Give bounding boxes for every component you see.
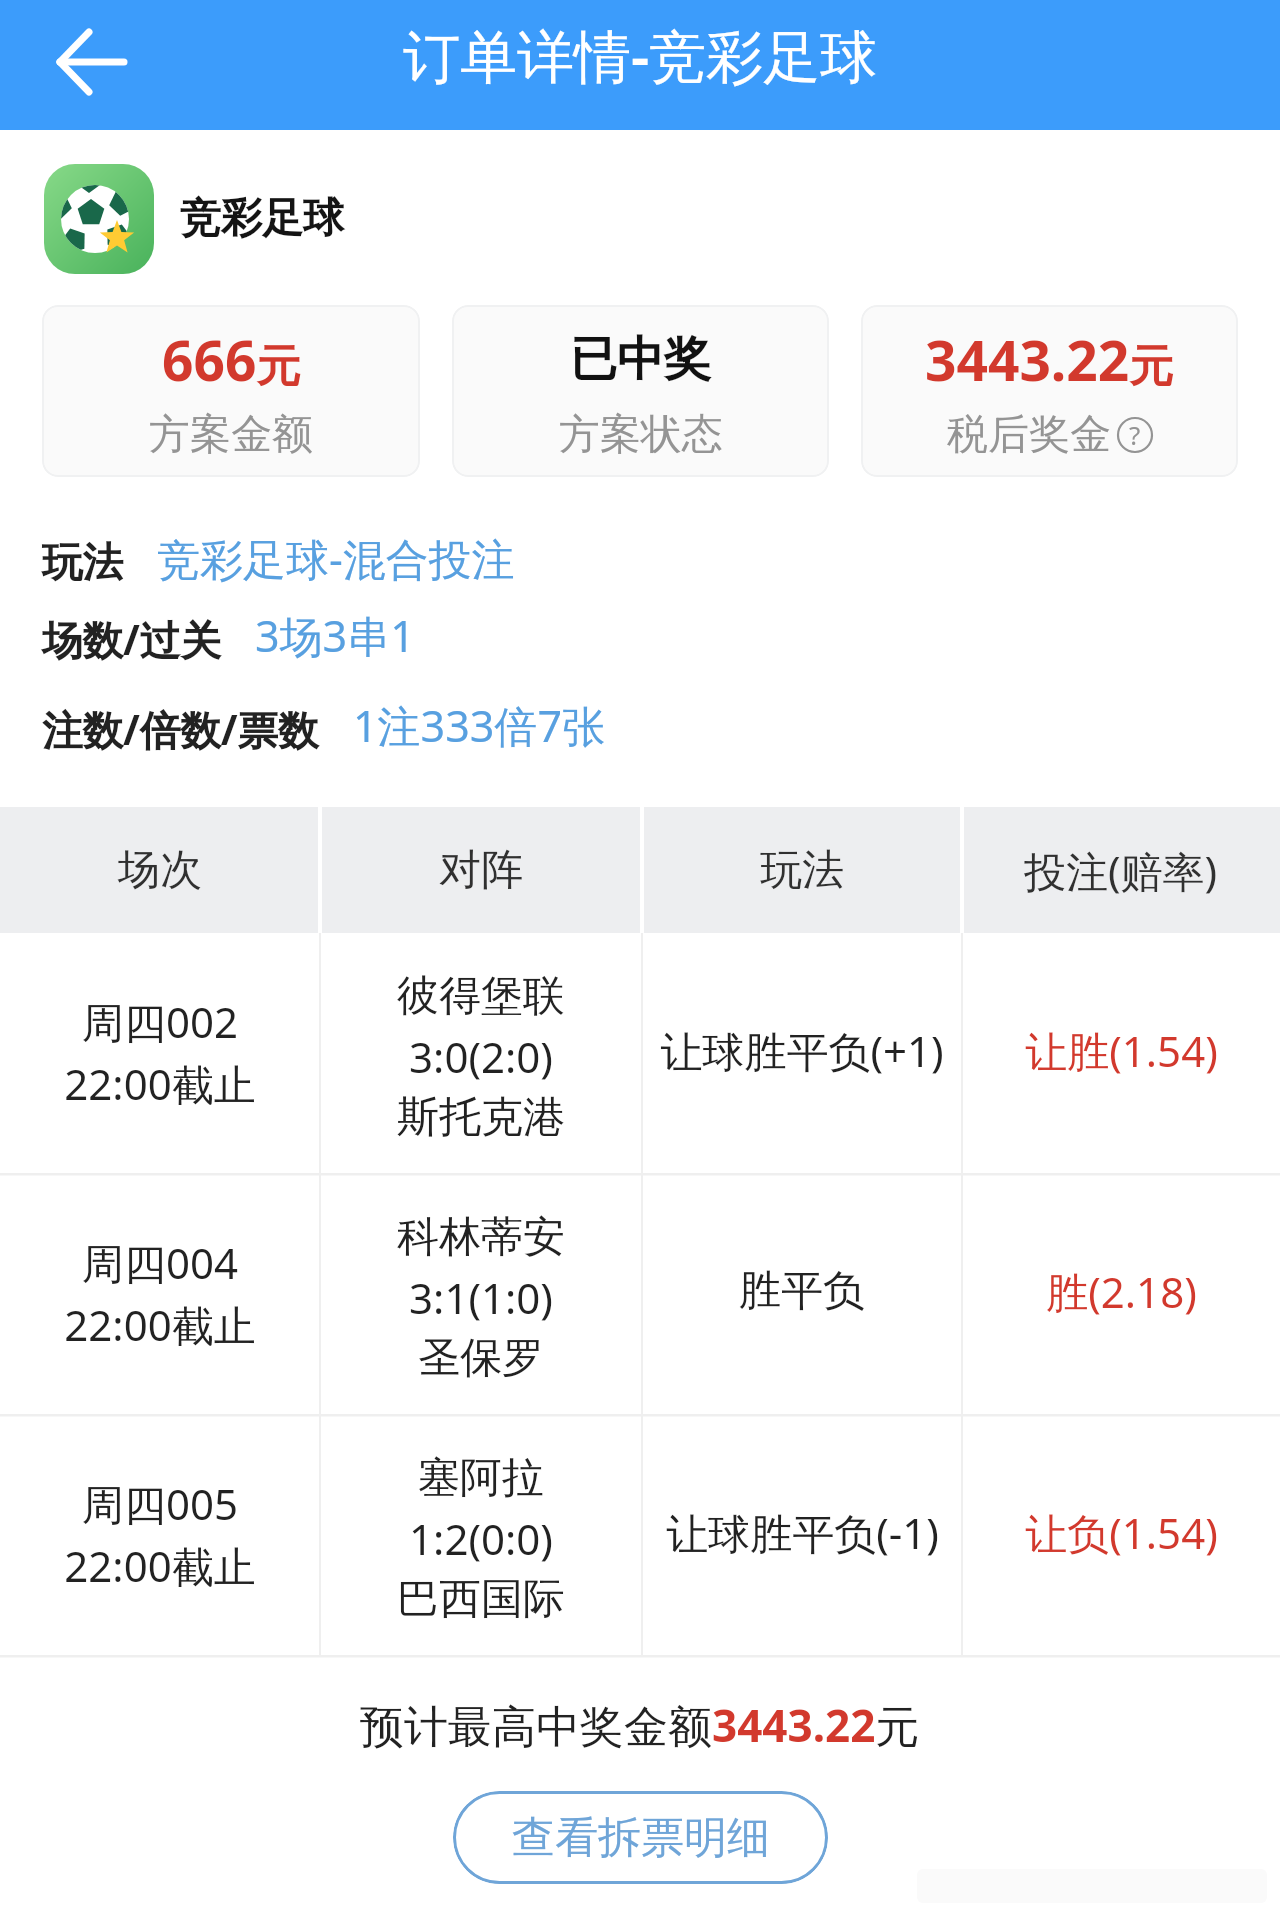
staticText: 让球胜平负(+1) [660, 1022, 944, 1079]
staticText: 胜平负 [739, 1265, 865, 1318]
staticText: 玩法 [760, 844, 844, 897]
button[interactable]: Help [1117, 417, 1153, 453]
staticText: 3443.22元 [925, 322, 1174, 397]
staticText: 周四005 22:00截止 [64, 1475, 256, 1595]
staticText: 彼得堡联 3:0(2:0) 斯托克港 [397, 970, 565, 1143]
staticText: 666元 [162, 322, 301, 397]
staticText: 让球胜平负(-1) [666, 1504, 939, 1561]
staticText: 预计最高中奖金额3443.22元 [360, 1695, 920, 1755]
staticText: 对阵 [439, 844, 523, 897]
staticText: 让胜(1.54) [1025, 1022, 1218, 1079]
staticText: 查看拆票明细 [512, 1811, 770, 1865]
staticText: 玩法 [42, 537, 123, 588]
staticText: 场次 [118, 844, 202, 897]
staticText: 注数/倍数/票数 [42, 702, 319, 757]
staticText: 3场3串1 [255, 606, 415, 665]
staticText: 胜(2.18) [1046, 1263, 1197, 1320]
button[interactable]: 查看拆票明细 [453, 1791, 828, 1884]
staticText: 场数/过关 [42, 612, 221, 667]
staticText: 已中奖 [570, 330, 711, 389]
staticText: 周四004 22:00截止 [64, 1234, 256, 1354]
staticText: 方案状态 [559, 409, 723, 461]
staticText: 竞彩足球 [180, 193, 344, 245]
staticText: ? [1129, 417, 1141, 452]
staticText: 让负(1.54) [1025, 1504, 1218, 1561]
staticText: 竞彩足球-混合投注 [157, 529, 515, 588]
staticText: 周四002 22:00截止 [64, 993, 256, 1113]
staticText: 税后奖金 [947, 409, 1111, 461]
staticText: 投注(赔率) [1024, 842, 1218, 899]
staticText: 塞阿拉 1:2(0:0) 巴西国际 [397, 1452, 565, 1625]
button[interactable]: Back [22, 0, 162, 130]
staticText: 科林蒂安 3:1(1:0) 圣保罗 [397, 1211, 565, 1384]
staticText: 1注333倍7张 [353, 696, 605, 755]
staticText: 订单详情-竞彩足球 [0, 16, 1280, 94]
staticText: 方案金额 [149, 409, 313, 461]
